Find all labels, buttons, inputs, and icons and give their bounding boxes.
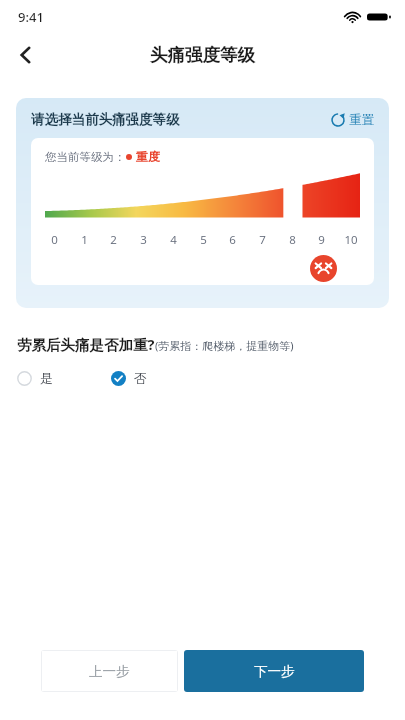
button[interactable]: 下一步	[184, 650, 364, 692]
staticText: 重度	[136, 149, 160, 164]
staticText: 6	[229, 232, 236, 248]
staticText: 9	[318, 232, 325, 248]
staticText: 3	[140, 232, 147, 248]
button[interactable]: 重置	[331, 112, 374, 128]
staticText: 1	[81, 232, 88, 248]
staticText: 劳累后头痛是否加重?	[17, 334, 155, 354]
staticText: 5	[200, 232, 207, 248]
staticText: 7	[259, 232, 266, 248]
staticText: 2	[110, 232, 117, 248]
staticText: 重置	[349, 112, 374, 128]
staticText: (劳累指：爬楼梯，提重物等)	[155, 338, 294, 353]
button[interactable]: 上一步	[41, 650, 178, 692]
staticText: 4	[170, 232, 177, 248]
staticText: 8	[289, 232, 296, 248]
button[interactable]: 否	[111, 370, 147, 386]
button[interactable]: Back	[6, 35, 46, 75]
staticText: 您当前等级为：	[45, 150, 126, 164]
button[interactable]: Severe pain face	[310, 255, 337, 282]
staticText: 0	[51, 232, 58, 248]
staticText: 9:41	[18, 8, 44, 26]
staticText: 下一步	[254, 663, 295, 680]
staticText: 请选择当前头痛强度等级	[31, 111, 180, 128]
staticText: 否	[134, 370, 147, 386]
staticText: 上一步	[89, 663, 130, 680]
staticText: 头痛强度等级	[150, 44, 255, 66]
button[interactable]: 是	[17, 370, 53, 386]
staticText: 是	[40, 370, 53, 386]
staticText: 10	[344, 232, 358, 248]
